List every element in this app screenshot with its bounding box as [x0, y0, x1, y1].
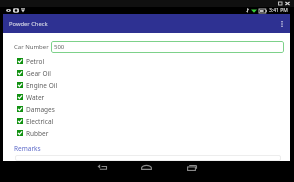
staticText: Gear Oil — [26, 69, 51, 78]
staticText: Water — [26, 93, 45, 102]
staticText: Damages — [26, 105, 55, 114]
button[interactable]: Back — [79, 161, 124, 173]
button[interactable]: Home — [124, 161, 169, 173]
button[interactable]: Gear Oil — [17, 67, 290, 79]
button[interactable]: Damages — [17, 103, 290, 115]
button[interactable]: 500 — [51, 41, 284, 53]
button[interactable]: Maximize — [278, 1, 283, 6]
staticText: Remarks — [14, 144, 41, 153]
button[interactable]: Electrical — [17, 115, 290, 127]
staticText: Petrol — [26, 57, 45, 66]
button[interactable]: Powder Check — [3, 14, 290, 33]
staticText: Powder Check — [9, 20, 48, 28]
button[interactable]: More options — [274, 14, 290, 33]
staticText: 500 — [54, 43, 65, 51]
button[interactable]: Engine Oil — [17, 79, 290, 91]
button[interactable]: Rubber — [17, 127, 290, 139]
staticText: Car Number — [14, 43, 49, 51]
staticText: 3:41 PM — [269, 7, 288, 14]
button[interactable]: Close — [285, 1, 290, 6]
staticText: Rubber — [26, 129, 49, 138]
button[interactable]: Recents — [169, 161, 214, 173]
staticText: Engine Oil — [26, 81, 58, 90]
staticText: Electrical — [26, 117, 54, 126]
button[interactable]: Remarks — [14, 144, 281, 161]
button[interactable]: Petrol — [17, 55, 290, 67]
button[interactable]: Water — [17, 91, 290, 103]
